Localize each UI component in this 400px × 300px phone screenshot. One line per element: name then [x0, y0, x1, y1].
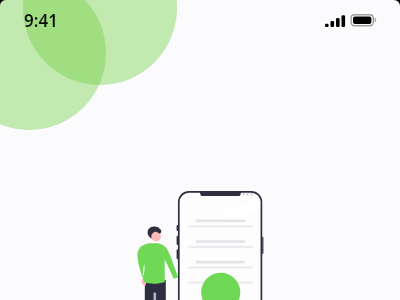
staticText: 9:41: [24, 9, 58, 32]
other: Signal strength and battery level: [325, 14, 377, 27]
button[interactable]: Get started illustration: [0, 0, 400, 300]
